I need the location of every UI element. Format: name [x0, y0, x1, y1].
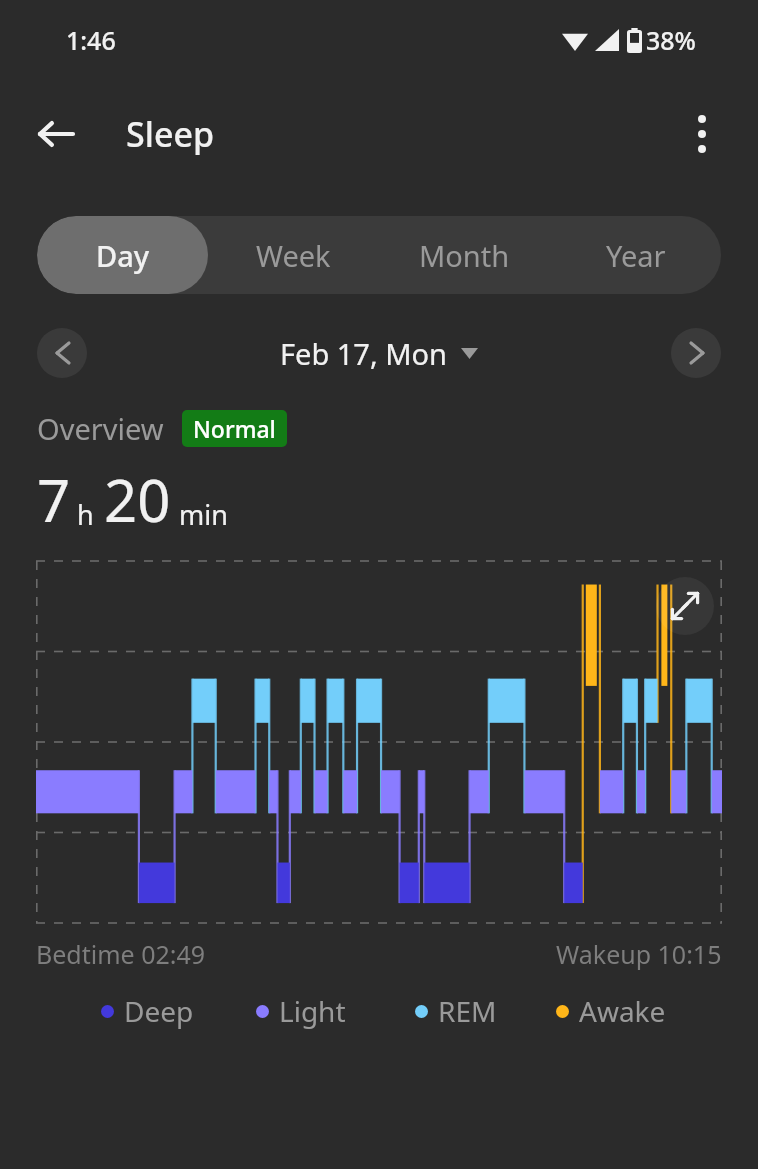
staticText: h	[77, 496, 94, 533]
button[interactable]: REM	[378, 992, 533, 1030]
staticText: Day	[96, 236, 150, 275]
staticText: 38%	[646, 23, 696, 57]
button[interactable]: More options	[670, 102, 734, 166]
staticText: Feb 17, Mon	[280, 334, 448, 373]
button[interactable]: Previous day	[37, 328, 87, 378]
button[interactable]: Year	[550, 216, 721, 294]
staticText: 1:46	[66, 23, 116, 57]
staticText: REM	[438, 992, 497, 1030]
staticText: Wakeup 10:15	[556, 937, 722, 971]
staticText: Awake	[579, 992, 666, 1030]
staticText: 7	[37, 460, 71, 539]
staticText: min	[179, 496, 228, 533]
button[interactable]: Light	[224, 992, 378, 1030]
button[interactable]: Feb 17, Mon	[274, 330, 484, 377]
staticText: Sleep	[126, 111, 214, 157]
staticText: 20	[104, 460, 171, 539]
button[interactable]: Week	[208, 216, 379, 294]
staticText: Month	[419, 236, 510, 275]
staticText: Deep	[124, 992, 194, 1030]
staticText: Year	[606, 236, 666, 275]
staticText: Normal	[193, 413, 276, 444]
button[interactable]: Month	[379, 216, 550, 294]
button[interactable]: Expand chart	[656, 577, 714, 635]
button[interactable]: Next day	[671, 328, 721, 378]
staticText: Overview	[37, 409, 164, 448]
button[interactable]: Day	[37, 216, 208, 294]
button[interactable]: Deep	[70, 992, 224, 1030]
staticText: Week	[256, 236, 331, 275]
button[interactable]: Awake	[533, 992, 688, 1030]
staticText: Bedtime 02:49	[36, 937, 206, 971]
button[interactable]: Back	[24, 102, 88, 166]
staticText: Light	[279, 992, 346, 1030]
